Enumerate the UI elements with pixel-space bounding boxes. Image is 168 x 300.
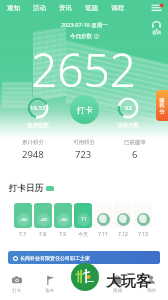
staticText: 健康指数 [27, 122, 49, 129]
button[interactable]: 已获徽章 [109, 139, 160, 161]
staticText: 已获徽章 [124, 139, 146, 146]
button[interactable]: Menu [146, 0, 168, 15]
staticText: 7.11 [98, 231, 108, 238]
button[interactable]: +50 [54, 203, 72, 238]
staticText: 今日步数 [70, 33, 92, 40]
button[interactable]: 11 [74, 203, 92, 237]
staticText: +50 [60, 217, 67, 222]
button[interactable]: 7.11 [94, 203, 112, 238]
staticText: 咨询 [152, 30, 161, 36]
button[interactable]: 笔题 [78, 0, 104, 15]
button[interactable]: +50 [14, 203, 32, 238]
button[interactable]: 打卡 [0, 265, 33, 300]
staticText: 19.53 [30, 104, 46, 112]
staticText: 7.9 [59, 231, 67, 238]
staticText: 今天 [78, 231, 88, 237]
staticText: 课程 [111, 4, 124, 12]
staticText: 达标天数 [117, 122, 139, 129]
button[interactable]: 累计积分 [8, 139, 58, 161]
staticText: 笔题 [85, 4, 98, 12]
button[interactable]: 打卡 [70, 95, 99, 124]
staticText: 打卡 [12, 288, 21, 294]
button[interactable]: 19.53 [27, 97, 49, 119]
button[interactable]: 可用积分 [58, 139, 109, 161]
button[interactable]: 7.13 [134, 203, 152, 238]
staticText: 7.12 [118, 231, 128, 238]
button[interactable]: 商城 [100, 265, 134, 300]
staticText: 通知 [7, 4, 20, 12]
button[interactable]: Home [71, 263, 99, 291]
button[interactable]: 52 [117, 97, 139, 119]
staticText: 可用积分 [73, 139, 95, 146]
staticText: 2948 [22, 148, 44, 161]
staticText: +50 [40, 217, 47, 222]
staticText: 资讯 [59, 4, 72, 12]
staticText: 723 [75, 148, 92, 161]
staticText: 长商科技有限责任公司职工之家 [20, 255, 90, 261]
staticText: 打卡 [77, 105, 93, 115]
staticText: 7.8 [39, 231, 47, 238]
staticText: 商城 [113, 288, 122, 294]
button[interactable]: 活动 [26, 0, 52, 15]
button[interactable]: 我的 [134, 265, 168, 300]
staticText: 活动 [33, 4, 46, 12]
staticText: 大玩客 [106, 272, 151, 291]
button[interactable]: 角色 [33, 265, 66, 300]
staticText: 打卡日历 [9, 183, 43, 194]
button[interactable]: 课程 [104, 0, 130, 15]
button[interactable]: 通知 [0, 0, 26, 15]
staticText: 2652 [31, 38, 137, 101]
button[interactable]: +50 [34, 203, 52, 238]
button[interactable]: 资讯 [52, 0, 78, 15]
button[interactable]: 长商科技有限责任公司职工之家 [8, 251, 160, 264]
button[interactable]: Customer service [148, 17, 164, 33]
staticText: 7.13 [138, 231, 148, 238]
staticText: +50 [20, 217, 27, 222]
button[interactable]: 赚积分 [156, 90, 168, 121]
button[interactable]: 7.12 [114, 203, 132, 238]
staticText: 6 [132, 148, 138, 161]
staticText: 11 [81, 216, 87, 223]
staticText: 角色 [45, 288, 54, 294]
staticText: 7.7 [19, 231, 27, 238]
staticText: 我的 [147, 288, 156, 294]
staticText: 赚积分 [159, 97, 165, 115]
staticText: 52 [125, 104, 132, 112]
staticText: 累计积分 [22, 139, 44, 146]
staticText: 2023-07-10 星期一 [61, 21, 108, 29]
